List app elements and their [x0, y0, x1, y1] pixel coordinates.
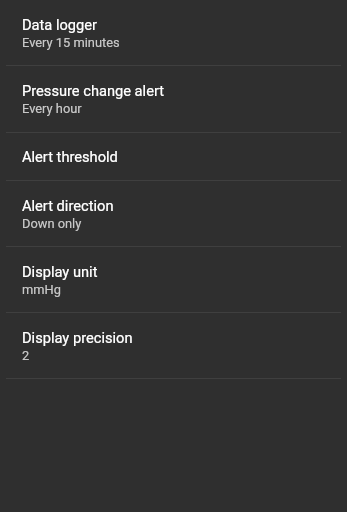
button[interactable]: Display unit [0, 247, 347, 312]
button[interactable]: Display precision [0, 313, 347, 378]
staticText: Alert threshold [22, 148, 118, 165]
staticText: Every hour [22, 101, 82, 116]
button[interactable]: Pressure change alert [0, 66, 347, 132]
staticText: mmHg [22, 282, 61, 297]
staticText: Pressure change alert [22, 82, 165, 99]
staticText: Every 15 minutes [22, 35, 120, 50]
staticText: Data logger [22, 16, 98, 33]
staticText: 2 [22, 348, 30, 363]
staticText: Display precision [22, 329, 133, 346]
button[interactable]: Data logger [0, 0, 347, 65]
staticText: Down only [22, 216, 82, 231]
button[interactable]: Alert threshold [0, 133, 347, 180]
button[interactable]: Alert direction [0, 181, 347, 246]
staticText: Alert direction [22, 197, 114, 214]
staticText: Display unit [22, 263, 98, 280]
